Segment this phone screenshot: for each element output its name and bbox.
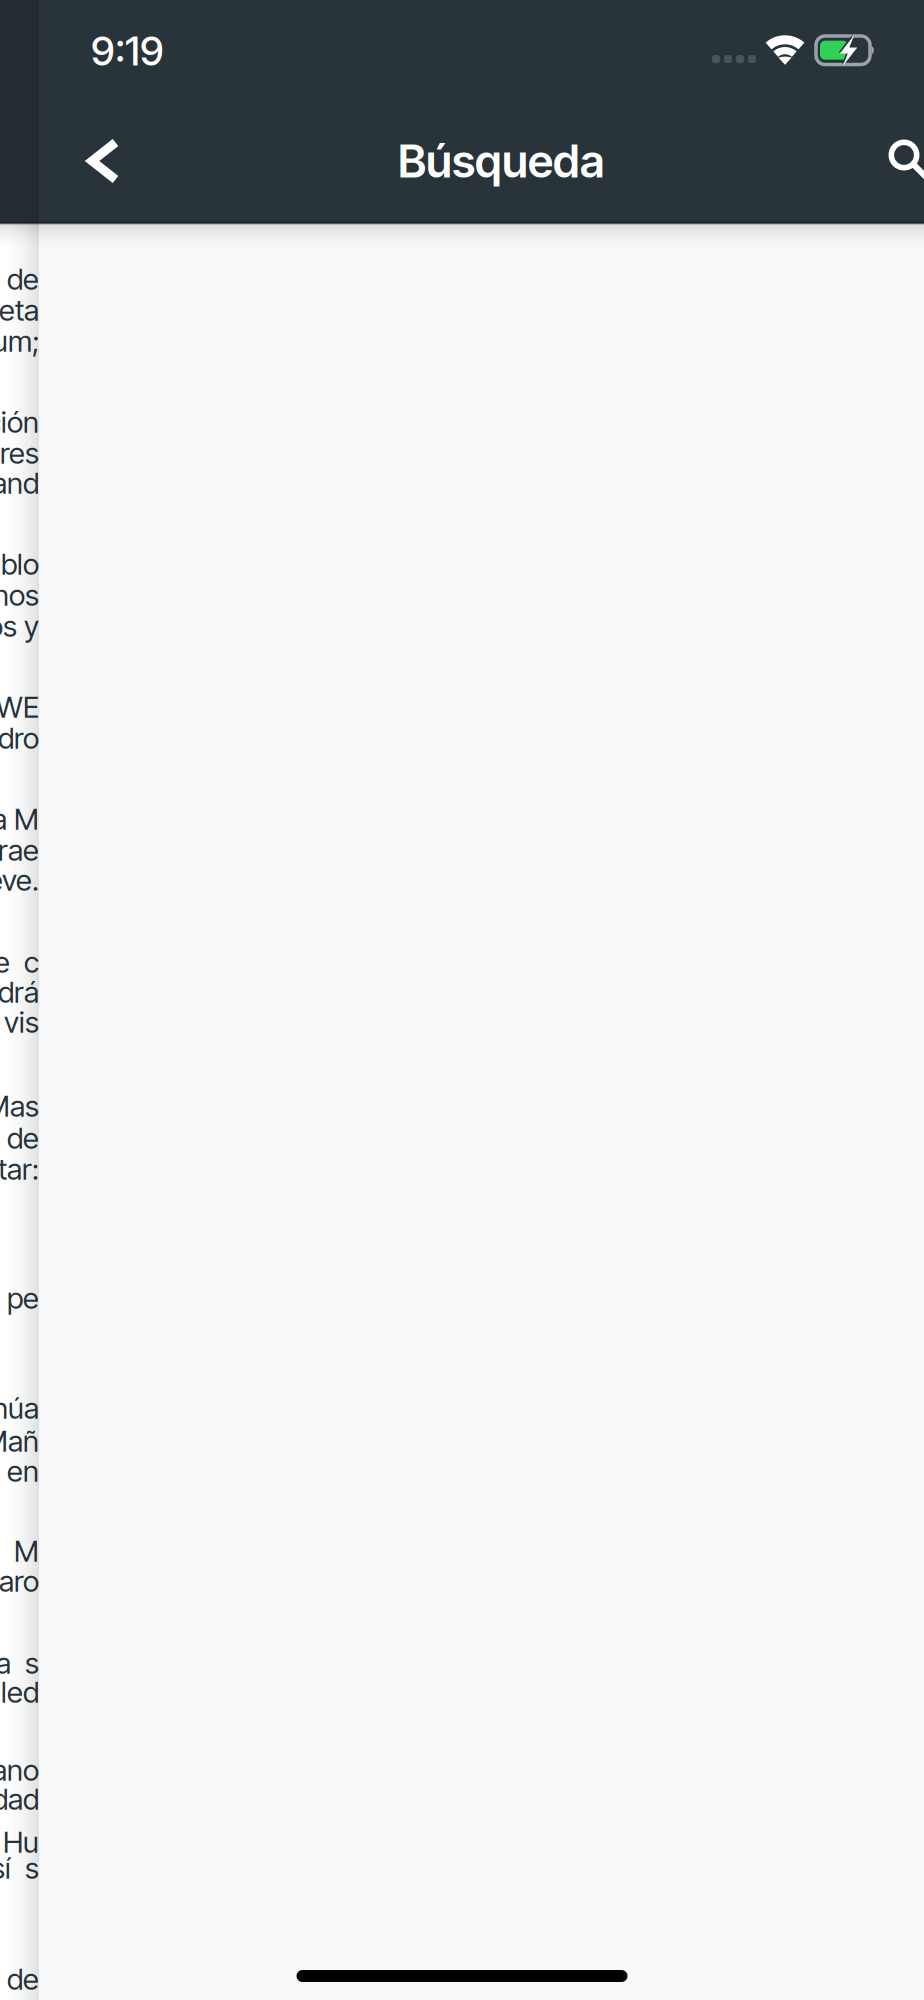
staticText: YAHWE — [0, 689, 39, 725]
staticText: ación — [0, 404, 39, 440]
staticText: así s — [0, 1850, 39, 1886]
staticText: la vis — [0, 1004, 39, 1040]
staticText: hijos y — [0, 608, 39, 644]
button[interactable]: Back — [39, 100, 129, 190]
staticText: israe — [0, 832, 39, 868]
staticText: apaled — [0, 1674, 39, 1710]
staticText: su pe — [0, 1280, 39, 1316]
staticText: en de — [0, 1961, 39, 1997]
staticText: demand — [0, 465, 39, 501]
staticText: breve. — [0, 862, 39, 898]
staticText: contar: — [0, 1151, 39, 1187]
staticText: reinum; — [0, 323, 39, 359]
staticText: san en — [0, 1453, 39, 1489]
staticText: 9:19 — [91, 27, 164, 75]
staticText: que c — [0, 944, 39, 980]
staticText: claro — [0, 1563, 39, 1599]
staticText: ba s — [0, 1645, 39, 1681]
button[interactable]: Search — [39, 100, 135, 196]
staticText: secreta — [0, 292, 39, 328]
staticText: y Mas — [0, 1088, 39, 1124]
staticText: mujeres — [0, 435, 39, 471]
staticText: la Mañ — [0, 1423, 39, 1459]
staticText: ción de — [0, 261, 39, 297]
staticText: hermanos — [0, 577, 39, 613]
staticText: mano — [0, 1752, 39, 1788]
staticText: de — [7, 1120, 39, 1156]
staticText: podrá — [0, 974, 39, 1010]
staticText: el Hu — [0, 1824, 39, 1860]
staticText: pueblo — [0, 546, 39, 582]
staticText: Pedro — [0, 720, 39, 756]
staticText: la M — [0, 801, 39, 837]
staticText: Búsqueda — [398, 134, 604, 188]
staticText: Yeshúa — [0, 1390, 39, 1426]
staticText: piedad — [0, 1781, 39, 1817]
staticText: do M — [0, 1533, 39, 1569]
